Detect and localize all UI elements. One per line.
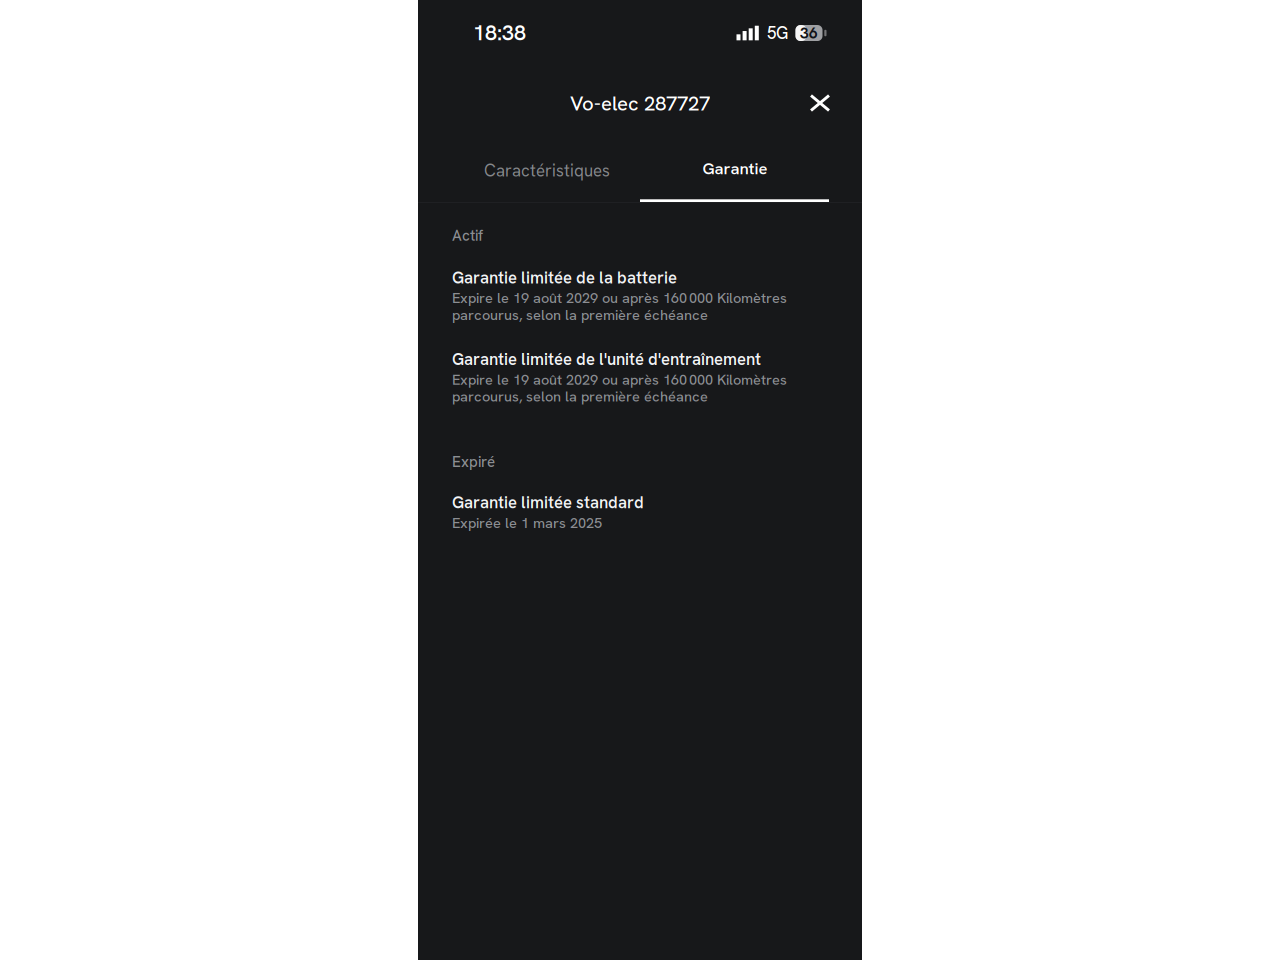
- staticText: 36: [800, 23, 818, 43]
- staticText: Caractéristiques: [484, 160, 610, 181]
- staticText: Actif: [452, 226, 483, 245]
- staticText: Garantie: [702, 158, 767, 179]
- staticText: Expiré: [452, 452, 495, 472]
- staticText: Garantie limitée de la batterie: [452, 267, 677, 288]
- button[interactable]: Garantie: [640, 148, 829, 203]
- button[interactable]: Caractéristiques: [451, 148, 640, 203]
- staticText: Expire le 19 août 2029 ou après 160 000 …: [452, 370, 787, 406]
- staticText: Expire le 19 août 2029 ou après 160 000 …: [452, 288, 787, 324]
- staticText: Expirée le 1 mars 2025: [452, 513, 602, 532]
- button[interactable]: Fermer: [798, 81, 842, 125]
- staticText: 5G: [767, 22, 788, 44]
- staticText: 18:38: [473, 19, 526, 47]
- staticText: Vo-elec 287727: [570, 90, 710, 117]
- staticText: Garantie limitée standard: [452, 492, 644, 513]
- staticText: Garantie limitée de l'unité d'entraîneme…: [452, 348, 761, 370]
